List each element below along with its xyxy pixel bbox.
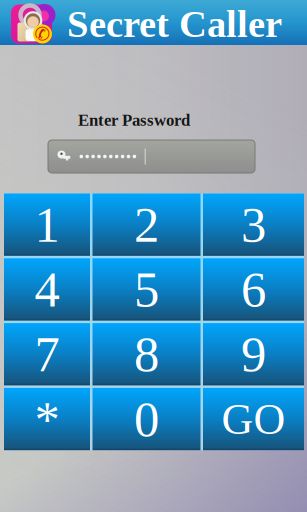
staticText: 4	[34, 261, 59, 317]
staticText: Enter Password	[78, 111, 190, 129]
button[interactable]: GO	[203, 388, 304, 450]
button[interactable]: *	[4, 388, 90, 450]
staticText: 1	[34, 197, 59, 253]
button[interactable]: 2	[92, 193, 200, 256]
staticText: ✆	[34, 23, 50, 45]
staticText: 2	[134, 197, 159, 253]
staticText: 0	[134, 391, 159, 447]
staticText: 6	[241, 261, 266, 317]
button[interactable]: 3	[203, 193, 304, 256]
button[interactable]: 7	[4, 323, 90, 385]
staticText: 3	[241, 197, 266, 253]
button[interactable]: 6	[203, 258, 304, 321]
button[interactable]: 0	[92, 388, 200, 450]
button[interactable]: 5	[92, 258, 200, 321]
staticText: Secret Caller	[67, 3, 282, 45]
staticText: 9	[241, 326, 266, 382]
staticText: 5	[134, 261, 159, 317]
button[interactable]: 1	[4, 193, 90, 256]
button[interactable]: 4	[4, 258, 90, 321]
button[interactable]: 9	[203, 323, 304, 385]
staticText: 7	[34, 326, 59, 382]
staticText: GO	[221, 395, 285, 443]
staticText: 8	[134, 326, 159, 382]
staticText: *	[34, 391, 59, 447]
button[interactable]: 8	[92, 323, 200, 385]
